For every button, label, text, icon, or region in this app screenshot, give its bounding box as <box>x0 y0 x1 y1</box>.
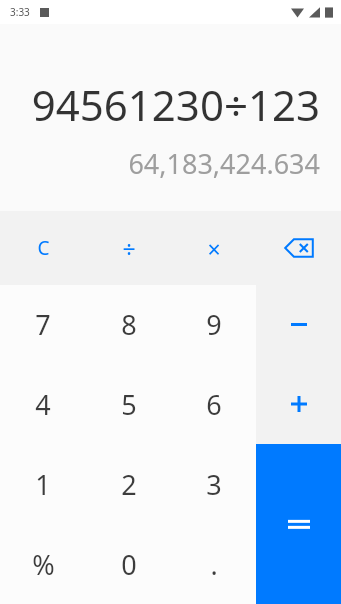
button[interactable]: Backspace <box>256 211 341 285</box>
staticText: 0 <box>121 546 137 583</box>
button[interactable]: 7 <box>0 285 86 364</box>
button[interactable]: 3 <box>171 444 256 524</box>
button[interactable] <box>256 285 341 364</box>
button[interactable]: % <box>0 524 86 604</box>
staticText: ÷ <box>122 233 136 264</box>
button[interactable]: 2 <box>86 444 171 524</box>
button[interactable]: × <box>171 211 256 285</box>
button[interactable]: 9 <box>171 285 256 364</box>
staticText: 2 <box>121 466 137 503</box>
staticText: 7 <box>35 306 51 343</box>
button[interactable] <box>256 364 341 444</box>
staticText: 9 <box>206 306 222 343</box>
staticText: % <box>32 546 55 583</box>
button[interactable]: Equals <box>256 444 341 604</box>
staticText: 94561230÷123 <box>31 76 320 133</box>
staticText: 4 <box>35 386 51 423</box>
button[interactable]: ÷ <box>86 211 171 285</box>
staticText: C <box>37 235 50 261</box>
staticText: 1 <box>35 466 51 503</box>
button[interactable]: C <box>0 211 86 285</box>
button[interactable]: 0 <box>86 524 171 604</box>
button[interactable]: 1 <box>0 444 86 524</box>
staticText: × <box>207 233 221 264</box>
staticText: 64,183,424.634 <box>128 145 320 182</box>
staticText: 3:33 <box>10 5 30 19</box>
staticText: 3 <box>206 466 222 503</box>
staticText: 6 <box>206 386 222 423</box>
button[interactable]: 6 <box>171 364 256 444</box>
staticText: 8 <box>121 306 137 343</box>
button[interactable]: 5 <box>86 364 171 444</box>
button[interactable]: 8 <box>86 285 171 364</box>
button[interactable]: 4 <box>0 364 86 444</box>
button[interactable]: . <box>171 524 256 604</box>
staticText: . <box>210 546 218 583</box>
staticText: 5 <box>121 386 137 423</box>
